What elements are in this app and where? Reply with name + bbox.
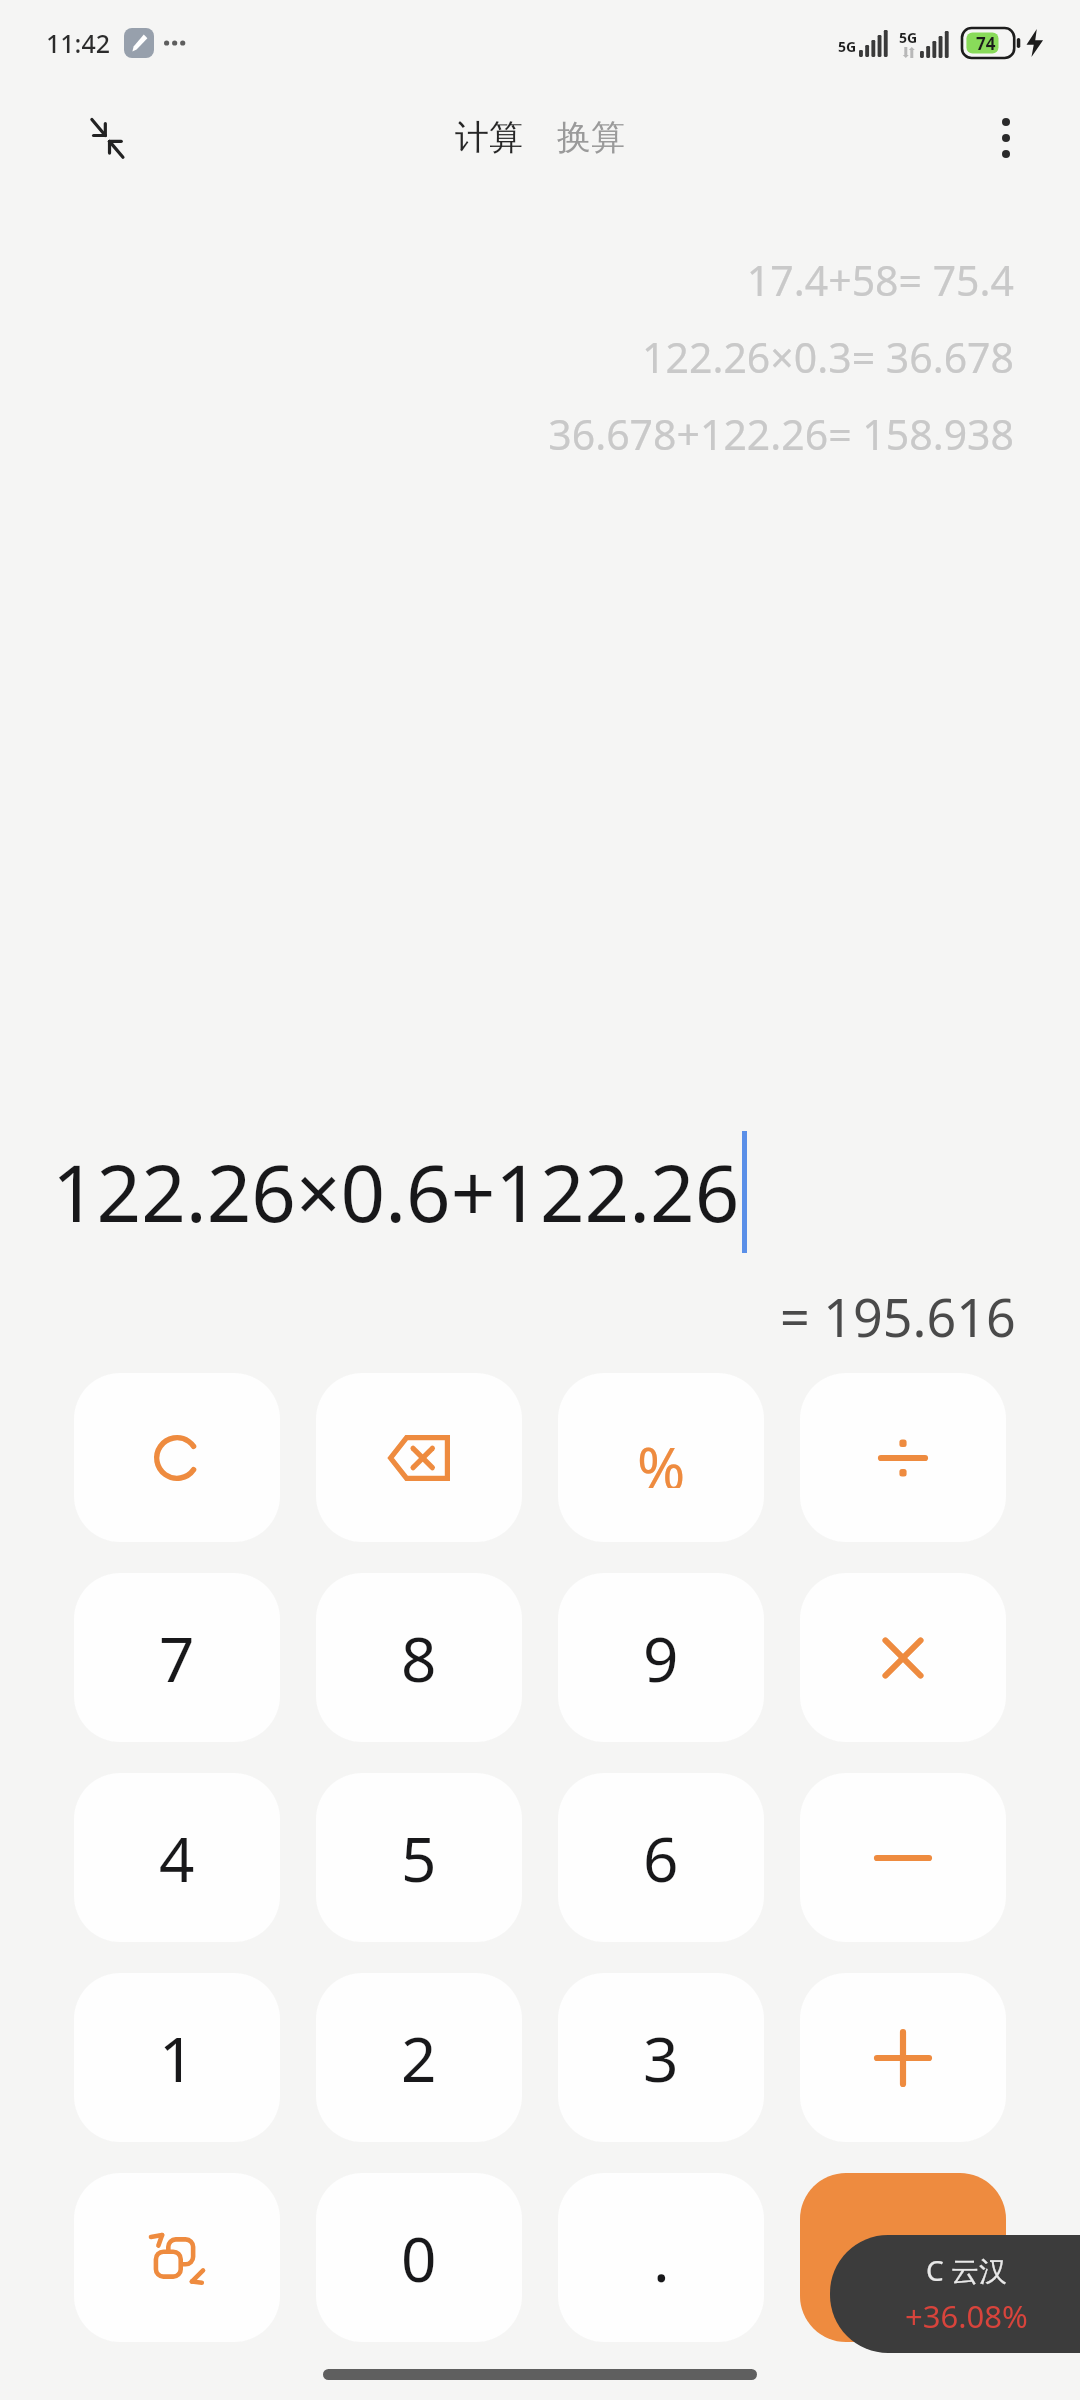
staticText: 0 bbox=[401, 2216, 437, 2300]
other: Percent bbox=[631, 1428, 691, 1488]
other: Multiply bbox=[875, 1630, 931, 1686]
button[interactable]: 6 bbox=[558, 1773, 764, 1942]
button[interactable]: Plus bbox=[800, 1973, 1006, 2142]
button[interactable]: 1 bbox=[74, 1973, 280, 2142]
staticText: 3 bbox=[643, 2016, 679, 2100]
other: Backspace bbox=[384, 1423, 454, 1493]
button[interactable]: 9 bbox=[558, 1573, 764, 1742]
button[interactable]: Percent bbox=[558, 1373, 764, 1542]
staticText: 74 bbox=[976, 32, 996, 55]
button[interactable]: 5 bbox=[316, 1773, 522, 1942]
button[interactable]: Backspace bbox=[316, 1373, 522, 1542]
staticText: 4 bbox=[159, 1816, 195, 1900]
staticText: 11:42 bbox=[46, 26, 111, 60]
button[interactable]: Divide bbox=[800, 1373, 1006, 1542]
staticText: 17.4+58= 75.4 bbox=[746, 252, 1014, 308]
other: Clear bbox=[150, 1431, 204, 1485]
staticText: = 195.616 bbox=[780, 1281, 1016, 1352]
staticText: 122.26×0.6+122.26 bbox=[52, 1139, 740, 1245]
button[interactable]: Minus bbox=[800, 1773, 1006, 1942]
staticText: 计算 bbox=[455, 116, 523, 159]
button[interactable]: More options bbox=[974, 106, 1038, 170]
staticText: 6 bbox=[643, 1816, 679, 1900]
button[interactable]: 122.26×0.3= 36.678 bbox=[642, 329, 1014, 385]
staticText: 5G bbox=[838, 37, 857, 56]
staticText: 1 bbox=[159, 2016, 195, 2100]
button[interactable]: Clear bbox=[74, 1373, 280, 1542]
button[interactable]: 计算 bbox=[445, 108, 533, 167]
staticText: C 云汉 bbox=[926, 2251, 1007, 2289]
staticText: 36.678+122.26= 158.938 bbox=[548, 406, 1014, 462]
other: Divide bbox=[874, 1429, 932, 1487]
staticText: 8 bbox=[401, 1616, 437, 1700]
button[interactable]: 36.678+122.26= 158.938 bbox=[548, 406, 1014, 462]
button[interactable]: 3 bbox=[558, 1973, 764, 2142]
staticText: 5G bbox=[899, 28, 918, 47]
button[interactable]: . bbox=[558, 2173, 764, 2342]
other: Plus bbox=[875, 2030, 931, 2086]
button[interactable]: 0 bbox=[316, 2173, 522, 2342]
staticText: . bbox=[653, 2216, 670, 2300]
button[interactable]: 17.4+58= 75.4 bbox=[746, 252, 1014, 308]
staticText: 5 bbox=[401, 1816, 437, 1900]
staticText: 9 bbox=[643, 1616, 679, 1700]
other: Minus bbox=[875, 1830, 931, 1886]
staticText: % bbox=[637, 1428, 686, 1488]
button[interactable]: 2 bbox=[316, 1973, 522, 2142]
button[interactable]: 8 bbox=[316, 1573, 522, 1742]
staticText: 122.26×0.3= 36.678 bbox=[642, 329, 1014, 385]
button[interactable]: Collapse bbox=[74, 105, 140, 171]
staticText: 7 bbox=[159, 1616, 195, 1700]
button[interactable]: Multiply bbox=[800, 1573, 1006, 1742]
staticText: +36.08% bbox=[905, 2295, 1028, 2337]
button[interactable]: C 云汉 bbox=[830, 2235, 1080, 2353]
other: Unit conversion bbox=[142, 2223, 212, 2293]
button[interactable]: 4 bbox=[74, 1773, 280, 1942]
button[interactable]: Equals bbox=[800, 2173, 1006, 2342]
button[interactable]: Unit conversion bbox=[74, 2173, 280, 2342]
button[interactable]: 换算 bbox=[547, 108, 635, 167]
staticText: 换算 bbox=[557, 116, 625, 159]
staticText: 2 bbox=[401, 2016, 437, 2100]
button[interactable]: 7 bbox=[74, 1573, 280, 1742]
